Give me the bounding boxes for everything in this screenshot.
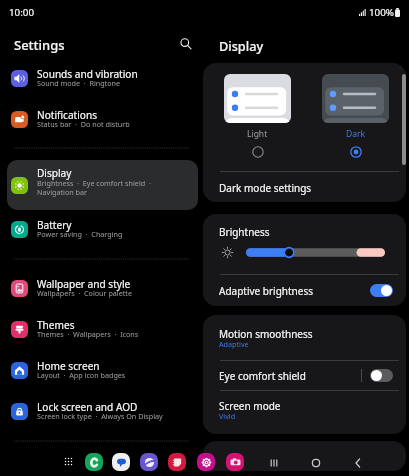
staticText: Notifications <box>37 108 98 122</box>
staticText: Screen mode <box>219 399 281 413</box>
staticText: Dark mode settings <box>219 181 312 195</box>
staticText: Layout · App icon badges <box>37 370 126 380</box>
staticText: Motion smoothness <box>219 327 313 341</box>
button[interactable]: Dark mode settings <box>203 172 406 202</box>
button[interactable]: App <box>197 453 215 471</box>
staticText: Wallpaper and style <box>37 277 131 291</box>
button[interactable]: App <box>85 453 103 471</box>
staticText: Sounds and vibration <box>37 67 138 81</box>
button[interactable]: App <box>168 453 186 471</box>
button[interactable]: Wallpaper and style <box>0 268 203 309</box>
staticText: Eye comfort shield <box>219 369 306 383</box>
button[interactable]: Battery <box>0 209 203 250</box>
staticText: Light <box>247 128 268 140</box>
button[interactable]: Recents <box>263 452 284 473</box>
staticText: Adaptive brightness <box>219 284 314 298</box>
button[interactable]: App <box>140 453 158 471</box>
button[interactable]: Themes <box>0 309 203 350</box>
button[interactable]: Toggle off <box>370 369 393 382</box>
staticText: Home screen <box>37 359 100 373</box>
button[interactable]: Back <box>347 452 368 473</box>
button[interactable]: Display <box>7 160 198 210</box>
staticText: Display <box>219 37 264 54</box>
staticText: Screen lock type · Always On Display <box>37 411 163 421</box>
staticText: Dark <box>346 128 366 140</box>
button[interactable]: Notifications <box>0 99 203 140</box>
staticText: Settings <box>14 36 65 54</box>
staticText: Status bar · Do not disturb <box>37 119 130 129</box>
button[interactable]: Lock screen and AOD <box>0 391 203 432</box>
button[interactable]: Eye comfort shield <box>203 361 406 390</box>
staticText: Sound mode · Ringtone <box>37 78 121 88</box>
button[interactable]: Sounds and vibration <box>0 58 203 99</box>
staticText: Themes <box>37 318 75 332</box>
button[interactable]: Home <box>305 452 326 473</box>
staticText: 10:00 <box>9 6 35 19</box>
button[interactable]: Apps <box>59 452 78 471</box>
staticText: Display <box>37 166 72 180</box>
button[interactable]: Search <box>175 33 196 54</box>
staticText: Themes · Wallpapers · Icons <box>37 329 139 339</box>
staticText: Brightness <box>219 225 270 239</box>
staticText: Brightness · Eye comfort shield · Naviga… <box>37 178 151 197</box>
staticText: Lock screen and AOD <box>37 400 138 414</box>
button[interactable]: App <box>226 453 244 471</box>
button[interactable] <box>224 74 291 123</box>
button[interactable]: App <box>112 453 130 471</box>
button[interactable]: Home screen <box>0 350 203 391</box>
staticText: Battery <box>37 218 72 232</box>
staticText: Vivid <box>219 411 236 421</box>
staticText: Adaptive <box>219 339 249 349</box>
staticText: Power saving · Charging <box>37 229 123 239</box>
staticText: Wallpapers · Colour palette <box>37 288 132 298</box>
button[interactable]: Toggle on <box>370 284 393 297</box>
staticText: 100% <box>369 6 394 19</box>
button[interactable] <box>322 74 389 123</box>
button[interactable]: Adaptive brightness <box>203 275 406 306</box>
